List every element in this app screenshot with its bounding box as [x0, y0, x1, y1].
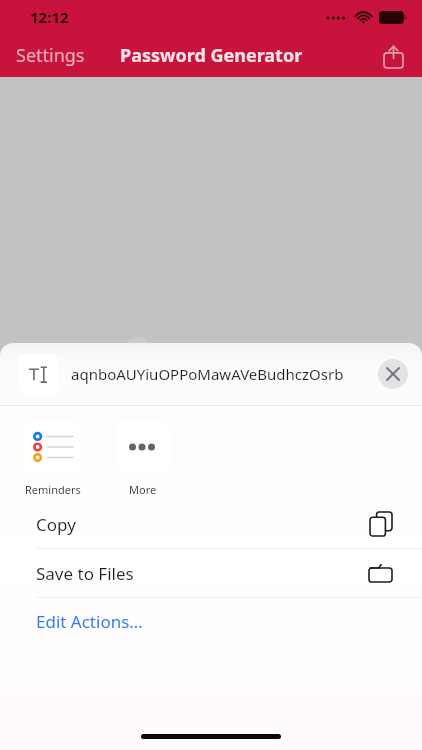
staticText: Save to Files [36, 562, 134, 585]
button[interactable]: More [112, 419, 174, 497]
button[interactable]: Reminders [22, 419, 84, 497]
staticText: aqnboAUYiuOPPoMawAVeBudhczOsrb [71, 364, 344, 384]
button[interactable]: Close [378, 359, 408, 389]
staticText: Edit Actions… [36, 610, 143, 633]
staticText: More [129, 482, 157, 497]
button[interactable]: Copy [0, 500, 422, 548]
button[interactable]: Save to Files [0, 549, 422, 597]
staticText: 12:12 [30, 7, 69, 27]
button[interactable]: Share [376, 39, 410, 73]
staticText: Copy [36, 513, 76, 536]
staticText: Password Generator [120, 43, 303, 68]
button[interactable]: Settings [16, 43, 85, 68]
button[interactable]: Edit Actions… [0, 598, 422, 645]
staticText: Reminders [25, 482, 81, 497]
